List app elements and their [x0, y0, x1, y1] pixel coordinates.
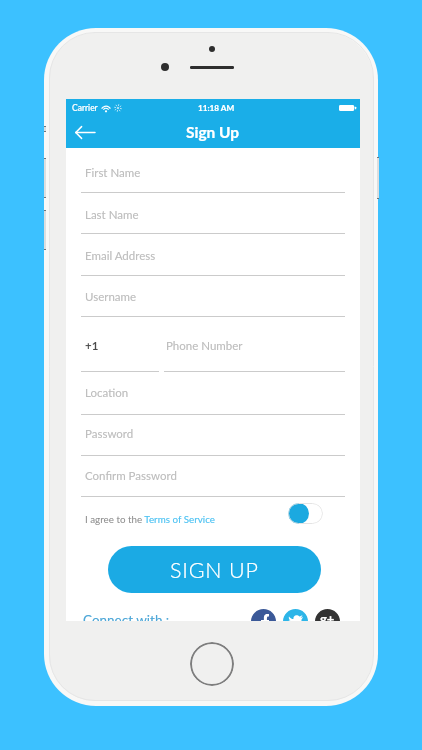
staticText: Confirm Password — [85, 469, 177, 483]
button[interactable]: Google Plus — [315, 609, 340, 621]
button[interactable]: Facebook — [251, 609, 276, 621]
button[interactable]: Agree to terms — [288, 503, 323, 524]
button[interactable]: Location — [81, 379, 345, 407]
button[interactable]: Phone Number — [166, 332, 345, 360]
staticText: First Name — [85, 166, 141, 180]
staticText: Password — [85, 427, 134, 441]
staticText: Connect with : — [83, 612, 170, 621]
staticText: SIGN UP — [170, 557, 259, 583]
staticText: 11:18 AM — [198, 103, 235, 113]
button[interactable]: +1 — [81, 332, 166, 360]
button[interactable]: First Name — [81, 159, 345, 187]
button[interactable]: Email Address — [81, 242, 345, 270]
staticText: g+ — [320, 611, 335, 621]
staticText: Carrier — [72, 103, 98, 113]
button[interactable]: SIGN UP — [108, 546, 321, 593]
button[interactable]: Twitter — [283, 609, 308, 621]
staticText: Sign Up — [186, 123, 240, 142]
staticText: Phone Number — [166, 339, 243, 353]
button[interactable]: I agree to the Terms of Service — [85, 507, 215, 531]
staticText: Email Address — [85, 249, 156, 263]
staticText: Location — [85, 386, 129, 400]
button[interactable]: Username — [81, 283, 345, 311]
staticText: +1 — [85, 339, 99, 353]
staticText: Username — [85, 290, 137, 304]
button[interactable]: Confirm Password — [81, 462, 345, 490]
button[interactable]: Last Name — [81, 201, 345, 229]
button[interactable]: Back — [66, 117, 103, 148]
staticText: I agree to the Terms of Service — [85, 513, 215, 525]
button[interactable]: Password — [81, 420, 345, 448]
staticText: Last Name — [85, 208, 139, 222]
